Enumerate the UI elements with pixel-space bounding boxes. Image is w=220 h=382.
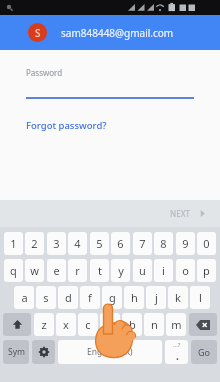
button[interactable]: Keyboard settings	[32, 340, 55, 364]
button[interactable]: Sym	[3, 340, 29, 364]
button[interactable]: 3	[47, 232, 66, 255]
button[interactable]: v	[100, 313, 120, 336]
staticText: a	[21, 290, 28, 305]
staticText: i	[162, 263, 165, 278]
button[interactable]: 1	[4, 232, 23, 255]
button[interactable]: s	[36, 286, 56, 309]
button[interactable]: r	[68, 259, 87, 282]
button[interactable]: j	[146, 286, 166, 309]
staticText: 7	[139, 236, 146, 251]
button[interactable]: Backspace	[189, 313, 217, 336]
button[interactable]: 0	[197, 232, 216, 255]
staticText: g	[109, 290, 116, 305]
staticText: q	[10, 263, 17, 278]
button[interactable]: e	[47, 259, 66, 282]
staticText: 5	[96, 236, 103, 251]
button[interactable]: 7	[133, 232, 152, 255]
button[interactable]: 5	[90, 232, 109, 255]
staticText: y	[118, 263, 124, 278]
button[interactable]: o	[176, 259, 195, 282]
button[interactable]: 6	[111, 232, 130, 255]
staticText: k	[175, 290, 181, 305]
staticText: e	[53, 263, 60, 278]
staticText: f	[88, 290, 92, 305]
staticText: 9	[182, 236, 189, 251]
staticText: S	[35, 26, 41, 40]
button[interactable]: k	[168, 286, 188, 309]
staticText: w	[30, 263, 39, 278]
staticText: 8	[160, 236, 167, 251]
button[interactable]: b	[122, 313, 142, 336]
staticText: p	[203, 263, 210, 278]
button[interactable]: English(UK)	[58, 340, 162, 364]
button[interactable]: a	[14, 286, 34, 309]
staticText: Password	[26, 67, 63, 78]
button[interactable]: u	[133, 259, 152, 282]
staticText: .	[176, 349, 179, 363]
staticText: h	[131, 290, 138, 305]
staticText: z	[41, 317, 47, 332]
button[interactable]: d	[58, 286, 78, 309]
staticText: b	[129, 317, 136, 332]
staticText: 0	[203, 236, 210, 251]
button[interactable]: n	[144, 313, 164, 336]
staticText: sam848448@gmail.com	[61, 26, 174, 40]
button[interactable]: Period	[165, 340, 188, 364]
staticText: c	[85, 317, 91, 332]
button[interactable]: 9	[176, 232, 195, 255]
staticText: n	[151, 317, 158, 332]
staticText: m	[171, 317, 182, 332]
button[interactable]: p	[197, 259, 216, 282]
button[interactable]: l	[190, 286, 210, 309]
staticText: x	[63, 317, 69, 332]
staticText: o	[182, 263, 189, 278]
button[interactable]: x	[56, 313, 76, 336]
staticText: Go	[198, 346, 210, 358]
button[interactable]: Shift	[3, 313, 31, 336]
button[interactable]: Forgot password?	[26, 119, 107, 132]
button[interactable]: 4	[68, 232, 87, 255]
button[interactable]: t	[90, 259, 109, 282]
button[interactable]: h	[124, 286, 144, 309]
staticText: 4	[74, 236, 81, 251]
staticText: v	[107, 317, 113, 332]
staticText: Sym	[8, 346, 25, 358]
button[interactable]: c	[78, 313, 98, 336]
button[interactable]: 8	[154, 232, 173, 255]
staticText: 2	[31, 236, 38, 251]
staticText: 3	[53, 236, 60, 251]
staticText: NEXT	[170, 208, 191, 219]
button[interactable]: NEXT	[156, 208, 220, 219]
button[interactable]: 2	[25, 232, 44, 255]
button[interactable]: f	[80, 286, 100, 309]
staticText: r	[75, 263, 80, 278]
staticText: 1	[10, 236, 17, 251]
button[interactable]: z	[34, 313, 54, 336]
staticText: English(UK)	[87, 346, 133, 358]
staticText: t	[98, 263, 102, 278]
staticText: 6	[117, 236, 124, 251]
button[interactable]: Go	[191, 340, 217, 364]
staticText: j	[155, 290, 158, 305]
button[interactable]: w	[25, 259, 44, 282]
staticText: s	[43, 290, 49, 305]
staticText: d	[65, 290, 72, 305]
button[interactable]: y	[111, 259, 130, 282]
button[interactable]: S	[0, 15, 220, 50]
button[interactable]: q	[4, 259, 23, 282]
staticText: u	[139, 263, 146, 278]
staticText: l	[199, 290, 202, 305]
button[interactable]: m	[166, 313, 186, 336]
staticText: ...?	[173, 341, 181, 349]
button[interactable]: g	[102, 286, 122, 309]
button[interactable]: i	[154, 259, 173, 282]
